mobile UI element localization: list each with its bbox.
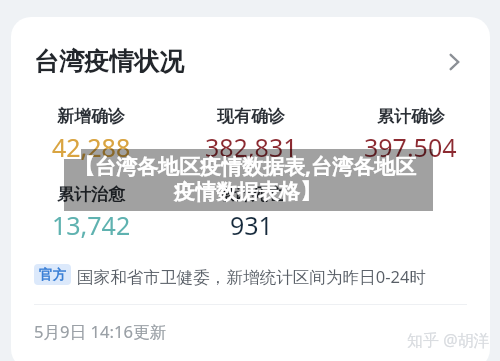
staticText: 国家和省市卫健委，新增统计区间为昨日0-24时 bbox=[77, 265, 427, 288]
button[interactable]: 累计确诊 bbox=[331, 106, 490, 164]
staticText: 931 bbox=[230, 208, 273, 242]
staticText: 官方 bbox=[39, 266, 66, 283]
staticText: 累计确诊 bbox=[377, 106, 445, 127]
staticText: 累计死亡 bbox=[217, 184, 285, 205]
button[interactable]: 累计治愈 bbox=[11, 184, 171, 242]
staticText: 382,831 bbox=[205, 130, 298, 164]
staticText: 累计治愈 bbox=[57, 184, 125, 205]
staticText: 5月9日 14:16更新 bbox=[34, 320, 167, 343]
button[interactable]: 台湾疫情状况 bbox=[11, 46, 490, 77]
staticText: 13,742 bbox=[52, 208, 131, 242]
staticText: 42,288 bbox=[52, 130, 131, 164]
staticText: 知乎 @胡洋 bbox=[407, 329, 490, 351]
staticText: 台湾疫情状况 bbox=[34, 46, 184, 77]
button[interactable]: 现有确诊 bbox=[171, 106, 331, 164]
button[interactable]: 累计死亡 bbox=[171, 184, 331, 242]
staticText: 现有确诊 bbox=[217, 106, 285, 127]
button[interactable]: 新增确诊 bbox=[11, 106, 171, 164]
staticText: 疫情数据表格】 bbox=[174, 179, 321, 205]
other: More details bbox=[446, 53, 464, 71]
staticText: 新增确诊 bbox=[57, 106, 125, 127]
staticText: 397.504 bbox=[364, 130, 457, 164]
staticText: 【台湾各地区疫情数据表,台湾各地区 bbox=[74, 152, 416, 181]
